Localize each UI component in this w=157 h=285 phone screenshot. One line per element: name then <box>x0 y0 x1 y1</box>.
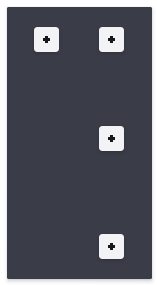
button[interactable]: Add item <box>99 126 124 151</box>
button[interactable]: Add item <box>34 27 59 52</box>
button[interactable]: Add item <box>99 234 124 259</box>
button[interactable]: Add item <box>99 27 124 52</box>
